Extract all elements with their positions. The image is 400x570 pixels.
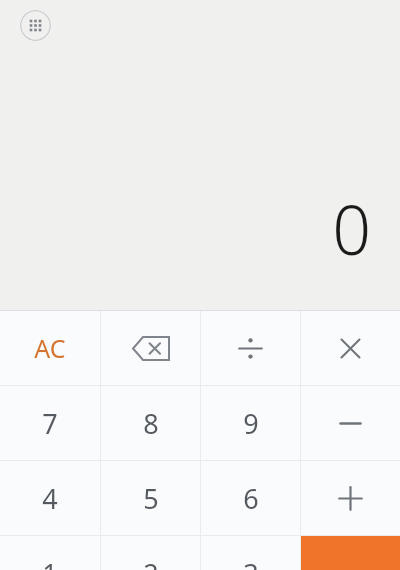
staticText: 0 [332, 182, 371, 275]
button[interactable]: 3 [201, 536, 300, 570]
button[interactable]: Plus [301, 461, 400, 535]
button[interactable]: Divide [201, 311, 300, 385]
staticText: 3 [243, 555, 259, 570]
button[interactable]: 5 [101, 461, 200, 535]
button[interactable]: 4 [0, 461, 100, 535]
staticText: 9 [243, 405, 259, 442]
button[interactable]: 2 [101, 536, 200, 570]
button[interactable]: Apps [20, 10, 51, 41]
button[interactable]: 8 [101, 386, 200, 460]
button[interactable]: 1 [0, 536, 100, 570]
button[interactable]: Backspace [101, 311, 200, 385]
button[interactable]: Minus [301, 386, 400, 460]
staticText: 1 [42, 555, 58, 570]
staticText: 6 [243, 480, 259, 517]
staticText: 7 [42, 405, 58, 442]
button[interactable]: 6 [201, 461, 300, 535]
button[interactable]: 7 [0, 386, 100, 460]
staticText: 4 [42, 480, 58, 517]
staticText: AC [34, 331, 66, 365]
staticText: 5 [143, 480, 159, 517]
button[interactable]: Multiply [301, 311, 400, 385]
button[interactable]: AC [0, 311, 100, 385]
staticText: 8 [143, 405, 159, 442]
staticText: 2 [143, 555, 159, 570]
button[interactable]: 9 [201, 386, 300, 460]
